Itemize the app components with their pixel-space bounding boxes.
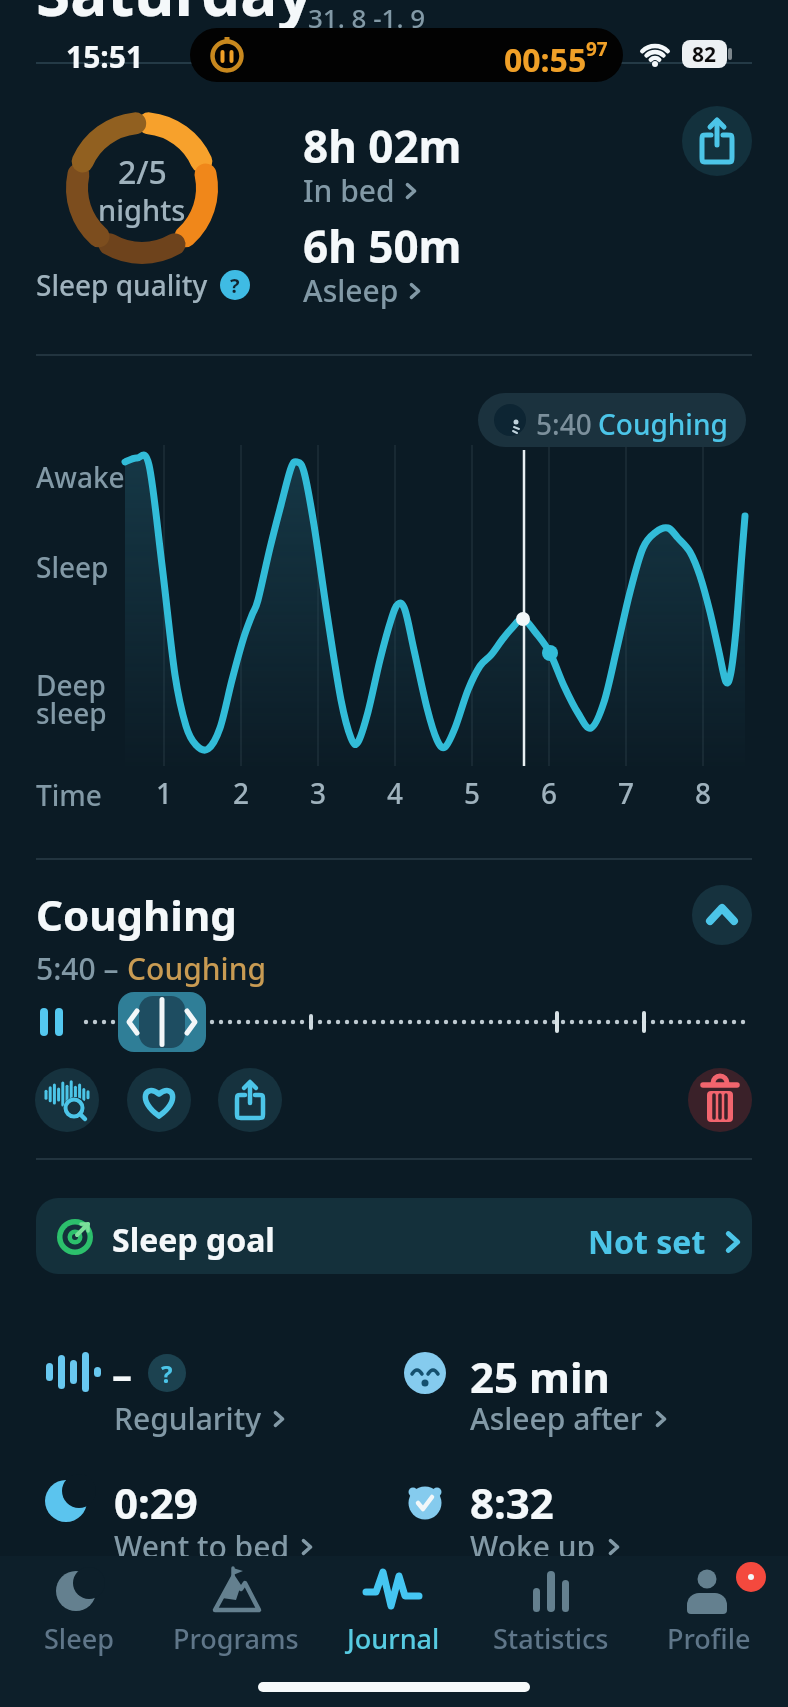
staticText: 5:40 – — [36, 948, 127, 989]
staticText: Sleep — [36, 548, 109, 586]
button[interactable]: ? — [148, 1354, 186, 1392]
staticText: 0:29 — [114, 1474, 198, 1531]
staticText: 8:32 — [470, 1474, 554, 1531]
staticText: Saturday — [36, 0, 313, 34]
button[interactable] — [35, 1068, 99, 1132]
staticText: sleep — [36, 694, 107, 732]
staticText: Statistics — [493, 1620, 609, 1657]
staticText: Coughing — [127, 948, 267, 989]
staticText: Woke up — [470, 1526, 596, 1567]
staticText: 31. 8 -1. 9 — [308, 0, 426, 35]
staticText: Asleep after — [470, 1398, 643, 1439]
staticText: 2/5 — [118, 150, 167, 194]
staticText: 5:40 — [536, 405, 592, 443]
staticText: Programs — [173, 1620, 299, 1657]
button[interactable]: ? — [220, 270, 250, 300]
button[interactable]: Sleep — [0, 1556, 157, 1657]
staticText: 8h 02m — [303, 116, 462, 176]
button[interactable] — [692, 885, 752, 945]
staticText: Coughing — [36, 886, 237, 943]
button[interactable]: In bed — [303, 170, 421, 211]
button[interactable] — [127, 1068, 191, 1132]
button[interactable]: Woke up — [470, 1526, 624, 1567]
staticText: Coughing — [598, 405, 728, 443]
button[interactable]: Went to bed — [114, 1526, 317, 1567]
staticText: ? — [230, 272, 240, 299]
staticText: Sleep — [44, 1620, 114, 1657]
staticText: 82 — [692, 40, 717, 68]
button[interactable]: 5:40 — [478, 393, 746, 447]
button[interactable]: Profile — [630, 1556, 788, 1657]
staticText: – — [112, 1346, 132, 1400]
staticText: 2 — [233, 774, 250, 812]
button[interactable]: 00:55 — [190, 28, 623, 82]
staticText: 15:51 — [66, 36, 144, 77]
staticText: Went to bed — [114, 1526, 289, 1567]
staticText: Sleep goal — [112, 1218, 275, 1262]
staticText: Journal — [347, 1620, 440, 1657]
staticText: Awake — [36, 458, 125, 496]
staticText: Time — [36, 776, 102, 814]
button[interactable] — [688, 1068, 752, 1132]
button[interactable]: Regularity — [114, 1398, 289, 1439]
staticText: Regularity — [114, 1398, 261, 1439]
staticText: 1 — [156, 774, 173, 812]
staticText: In bed — [303, 170, 395, 211]
staticText: Not set — [588, 1220, 706, 1264]
button[interactable]: Asleep — [303, 270, 425, 311]
button[interactable]: Asleep after — [470, 1398, 671, 1439]
staticText: 3 — [310, 774, 327, 812]
button[interactable]: Programs — [157, 1556, 314, 1657]
button[interactable] — [0, 985, 788, 1065]
staticText: 4 — [387, 774, 404, 812]
staticText: Asleep — [303, 270, 399, 311]
staticText: Sleep quality — [36, 266, 208, 304]
staticText: 97 — [586, 36, 608, 62]
staticText: ? — [161, 1357, 173, 1390]
staticText: nights — [98, 190, 186, 229]
button[interactable]: Journal — [314, 1556, 472, 1657]
button[interactable]: Statistics — [472, 1556, 630, 1657]
staticText: Profile — [667, 1620, 751, 1657]
staticText: 25 min — [470, 1348, 610, 1405]
button[interactable] — [682, 106, 752, 176]
button[interactable]: Sleep goal — [36, 1198, 752, 1274]
staticText: Deep — [36, 666, 106, 704]
button[interactable] — [218, 1068, 282, 1132]
staticText: 5 — [464, 774, 481, 812]
staticText: 6h 50m — [303, 216, 462, 276]
staticText: 7 — [618, 774, 635, 812]
staticText: 6 — [541, 774, 558, 812]
staticText: 8 — [695, 774, 712, 812]
staticText: 00:55 — [504, 38, 587, 82]
